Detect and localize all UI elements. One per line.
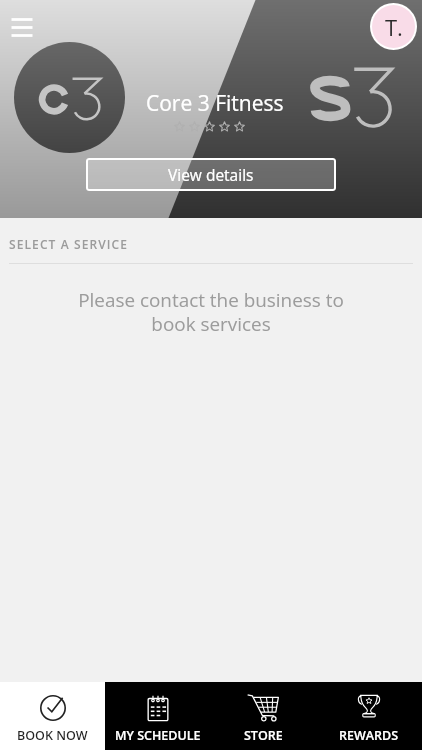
button[interactable]: T.	[372, 5, 415, 48]
staticText: REWARDS	[339, 727, 399, 744]
staticText: Please contact the business to book serv…	[78, 287, 344, 336]
staticText: View details	[168, 164, 254, 185]
button[interactable]: Menu	[4, 11, 40, 47]
button[interactable]: STORE	[210, 682, 316, 750]
staticText: STORE	[244, 727, 283, 744]
staticText: SELECT A SERVICE	[9, 236, 129, 252]
staticText: MY SCHEDULE	[115, 727, 201, 744]
button[interactable]: BOOK NOW	[0, 682, 105, 750]
staticText: T.	[385, 12, 403, 42]
staticText: Core 3 Fitness	[146, 89, 284, 118]
button[interactable]: View details	[86, 158, 336, 191]
staticText: BOOK NOW	[17, 727, 88, 744]
button[interactable]: REWARDS	[316, 682, 422, 750]
button[interactable]: MY SCHEDULE	[105, 682, 210, 750]
